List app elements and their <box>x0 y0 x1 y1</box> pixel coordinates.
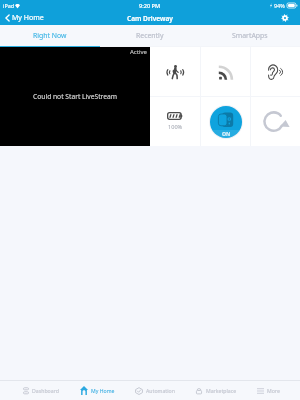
button[interactable]: Refresh <box>251 97 300 146</box>
staticText: Cam Driveway <box>127 14 173 23</box>
button[interactable]: My Home <box>0 13 48 23</box>
staticText: My Home <box>91 387 115 394</box>
button[interactable]: Sound <box>251 47 300 96</box>
staticText: More <box>267 387 280 394</box>
staticText: Automation <box>146 387 175 394</box>
button[interactable]: Battery <box>150 97 200 146</box>
staticText: 100% <box>168 123 183 131</box>
staticText: SmartApps <box>232 31 268 40</box>
staticText: Marketplace <box>206 387 237 394</box>
staticText: iPad <box>3 2 14 9</box>
staticText: ON <box>222 130 231 136</box>
button[interactable]: Camera on <box>201 97 250 146</box>
button[interactable]: Recently <box>100 25 200 46</box>
button[interactable]: More <box>257 381 280 400</box>
button[interactable]: Settings <box>275 11 300 25</box>
staticText: 94% <box>274 2 285 9</box>
staticText: Recently <box>136 31 164 40</box>
button[interactable]: Marketplace <box>195 381 237 400</box>
button[interactable]: SmartApps <box>200 25 300 46</box>
button[interactable]: Dashboard <box>23 381 59 400</box>
button[interactable]: My Home <box>80 381 115 400</box>
staticText: Could not Start LiveStream <box>33 92 117 101</box>
staticText: Dashboard <box>32 387 59 394</box>
staticText: 9:20 PM <box>139 2 161 10</box>
staticText: My Home <box>12 13 44 23</box>
staticText: Right Now <box>33 31 67 40</box>
button[interactable]: Right Now <box>0 25 100 46</box>
button[interactable]: Automation <box>135 381 175 400</box>
staticText: Active <box>130 48 147 56</box>
button[interactable]: Motion <box>150 47 200 96</box>
button[interactable]: Signal strength <box>201 47 250 96</box>
